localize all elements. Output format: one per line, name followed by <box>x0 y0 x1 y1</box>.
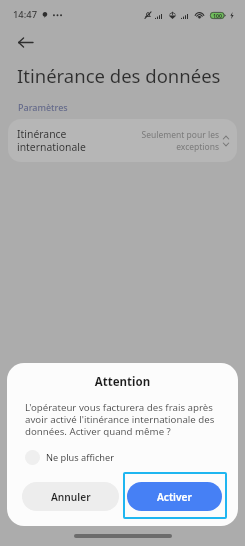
staticText: 100 <box>213 12 222 19</box>
staticText: L'opérateur vous facturera des frais apr… <box>25 401 221 438</box>
staticText: 14:47 <box>13 8 38 21</box>
button[interactable]: Annuler <box>22 482 119 511</box>
button[interactable]: Activer <box>127 482 222 511</box>
staticText: Itinérance internationale <box>17 127 86 154</box>
staticText: Activer <box>157 490 192 504</box>
staticText: Annuler <box>51 490 91 504</box>
staticText: Paramètres <box>18 101 68 113</box>
button[interactable]: Back <box>11 28 39 56</box>
staticText: Ne plus afficher <box>46 451 114 464</box>
staticText: Seulement pour les exceptions <box>141 129 219 153</box>
button[interactable]: Ne plus afficher <box>25 450 114 465</box>
button[interactable]: Itinérance internationale <box>8 119 237 162</box>
staticText: Itinérance des données <box>17 63 221 88</box>
staticText: Attention <box>7 374 238 390</box>
